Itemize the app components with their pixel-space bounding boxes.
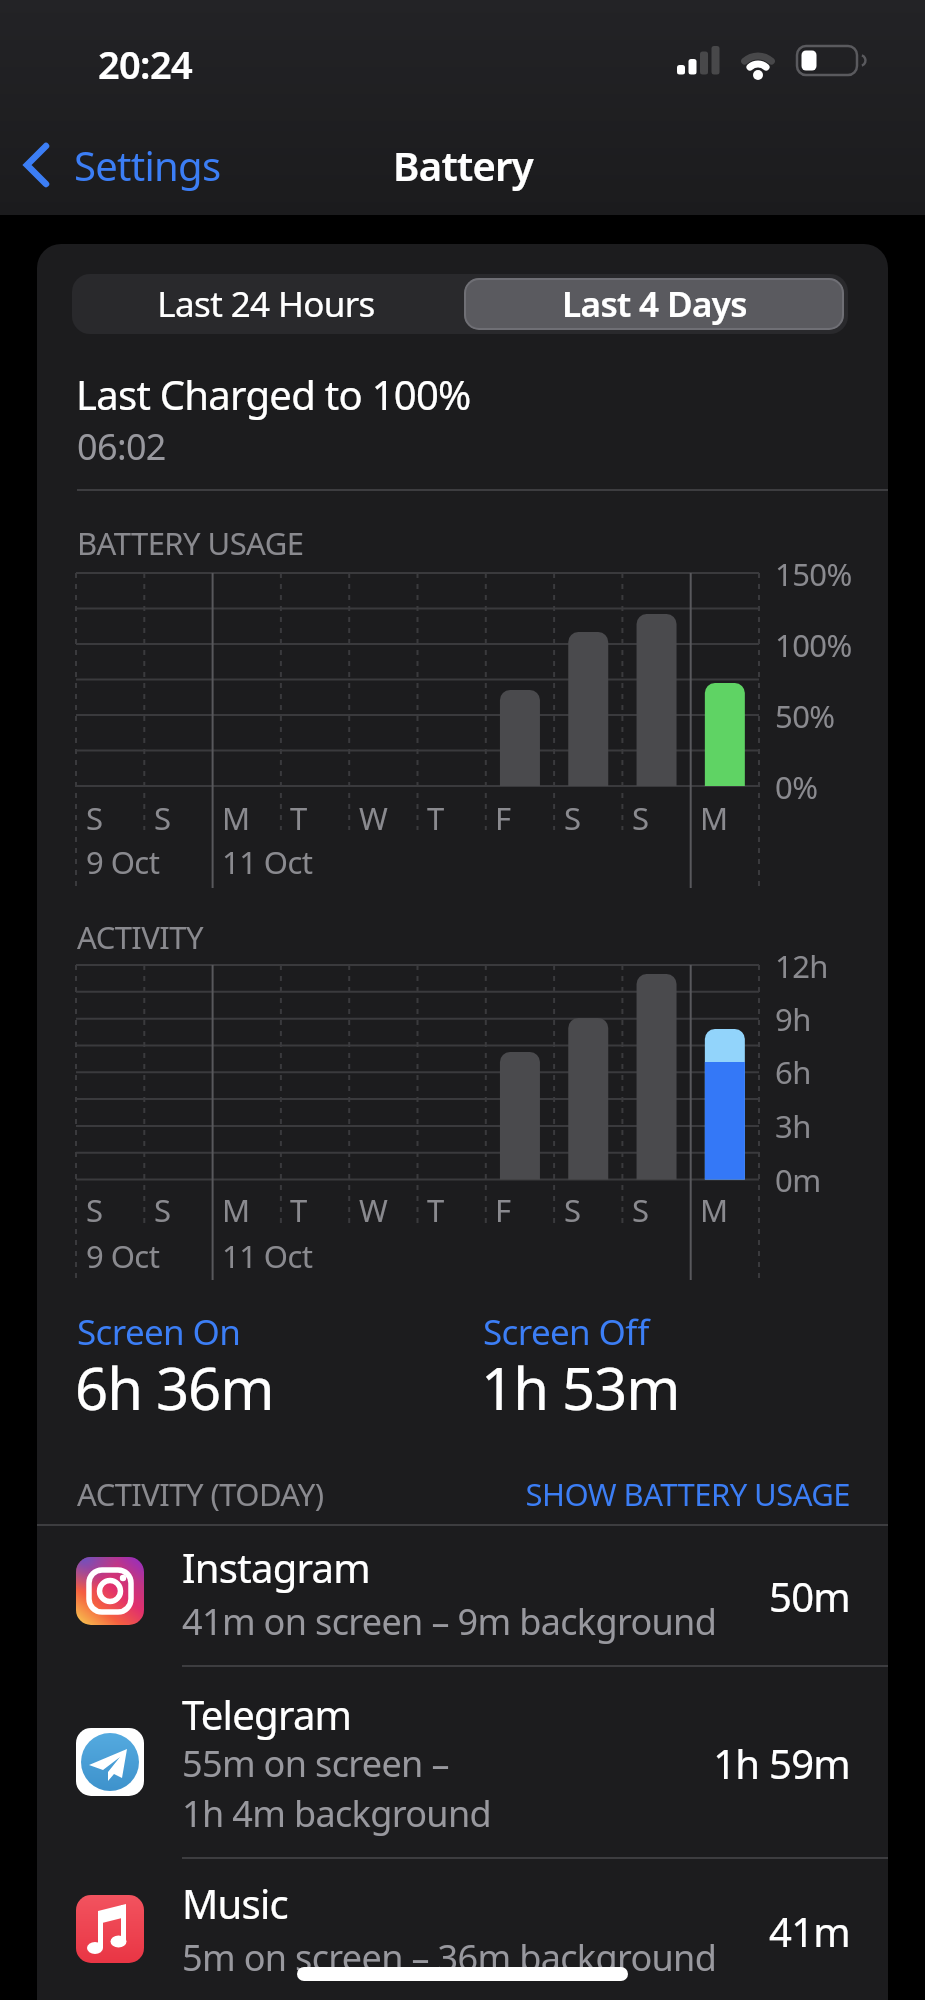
staticText: 0m: [775, 1159, 821, 1201]
staticText: 150%: [775, 553, 852, 595]
button[interactable]: [464, 278, 844, 330]
staticText: M: [700, 797, 728, 839]
staticText: 1h 59m: [713, 1736, 850, 1790]
staticText: 6h: [775, 1051, 811, 1093]
button[interactable]: SHOW BATTERY USAGE: [450, 1471, 850, 1517]
staticText: Last 24 Hours: [157, 280, 375, 328]
button[interactable]: [37, 1526, 888, 1666]
staticText: M: [222, 797, 250, 839]
button[interactable]: Last 24 Hours: [72, 278, 460, 330]
staticText: 6h 36m: [75, 1348, 274, 1427]
staticText: S: [564, 1189, 581, 1231]
staticText: W: [359, 1189, 388, 1231]
staticText: 20:24: [98, 38, 193, 90]
staticText: 9 Oct: [86, 841, 160, 883]
staticText: 41m: [769, 1904, 850, 1958]
staticText: Battery: [393, 138, 533, 192]
staticText: SHOW BATTERY USAGE: [525, 1473, 850, 1515]
staticText: S: [564, 797, 581, 839]
staticText: M: [222, 1189, 250, 1231]
staticText: Screen Off: [483, 1308, 649, 1356]
staticText: Last 4 Days: [562, 280, 747, 328]
staticText: W: [359, 797, 388, 839]
staticText: Last Charged to 100%: [76, 367, 471, 421]
staticText: T: [290, 797, 307, 839]
staticText: ACTIVITY (TODAY): [77, 1473, 324, 1515]
staticText: S: [154, 1189, 171, 1231]
staticText: ACTIVITY: [77, 916, 203, 958]
staticText: Instagram: [182, 1540, 370, 1594]
staticText: BATTERY USAGE: [77, 522, 304, 564]
staticText: 41m on screen – 9m background: [182, 1597, 717, 1646]
staticText: T: [427, 1189, 444, 1231]
staticText: 50%: [775, 695, 835, 737]
staticText: 12h: [775, 945, 828, 987]
staticText: Music: [182, 1876, 289, 1930]
staticText: T: [427, 797, 444, 839]
staticText: F: [495, 797, 511, 839]
staticText: 0%: [775, 766, 818, 808]
staticText: Telegram: [182, 1687, 352, 1741]
staticText: 100%: [775, 624, 852, 666]
staticText: 55m on screen –: [182, 1739, 449, 1788]
button[interactable]: [37, 1859, 888, 2000]
staticText: T: [290, 1189, 307, 1231]
staticText: 3h: [775, 1105, 811, 1147]
staticText: 9 Oct: [86, 1235, 160, 1277]
staticText: M: [700, 1189, 728, 1231]
staticText: S: [86, 797, 103, 839]
staticText: 1h 53m: [481, 1348, 680, 1427]
staticText: S: [632, 797, 649, 839]
staticText: 1h 4m background: [182, 1789, 491, 1838]
staticText: 5m on screen – 36m background: [182, 1933, 717, 1982]
staticText: 9h: [775, 998, 811, 1040]
button[interactable]: Last 4 Days: [460, 278, 848, 330]
staticText: 06:02: [77, 422, 166, 471]
staticText: S: [632, 1189, 649, 1231]
staticText: S: [154, 797, 171, 839]
staticText: 11 Oct: [222, 841, 313, 883]
staticText: Screen On: [77, 1308, 241, 1356]
staticText: 50m: [769, 1569, 850, 1623]
staticText: F: [495, 1189, 511, 1231]
staticText: Settings: [74, 138, 221, 192]
staticText: 11 Oct: [222, 1235, 313, 1277]
button[interactable]: [37, 1667, 888, 1857]
staticText: S: [86, 1189, 103, 1231]
button[interactable]: Settings: [74, 135, 221, 195]
